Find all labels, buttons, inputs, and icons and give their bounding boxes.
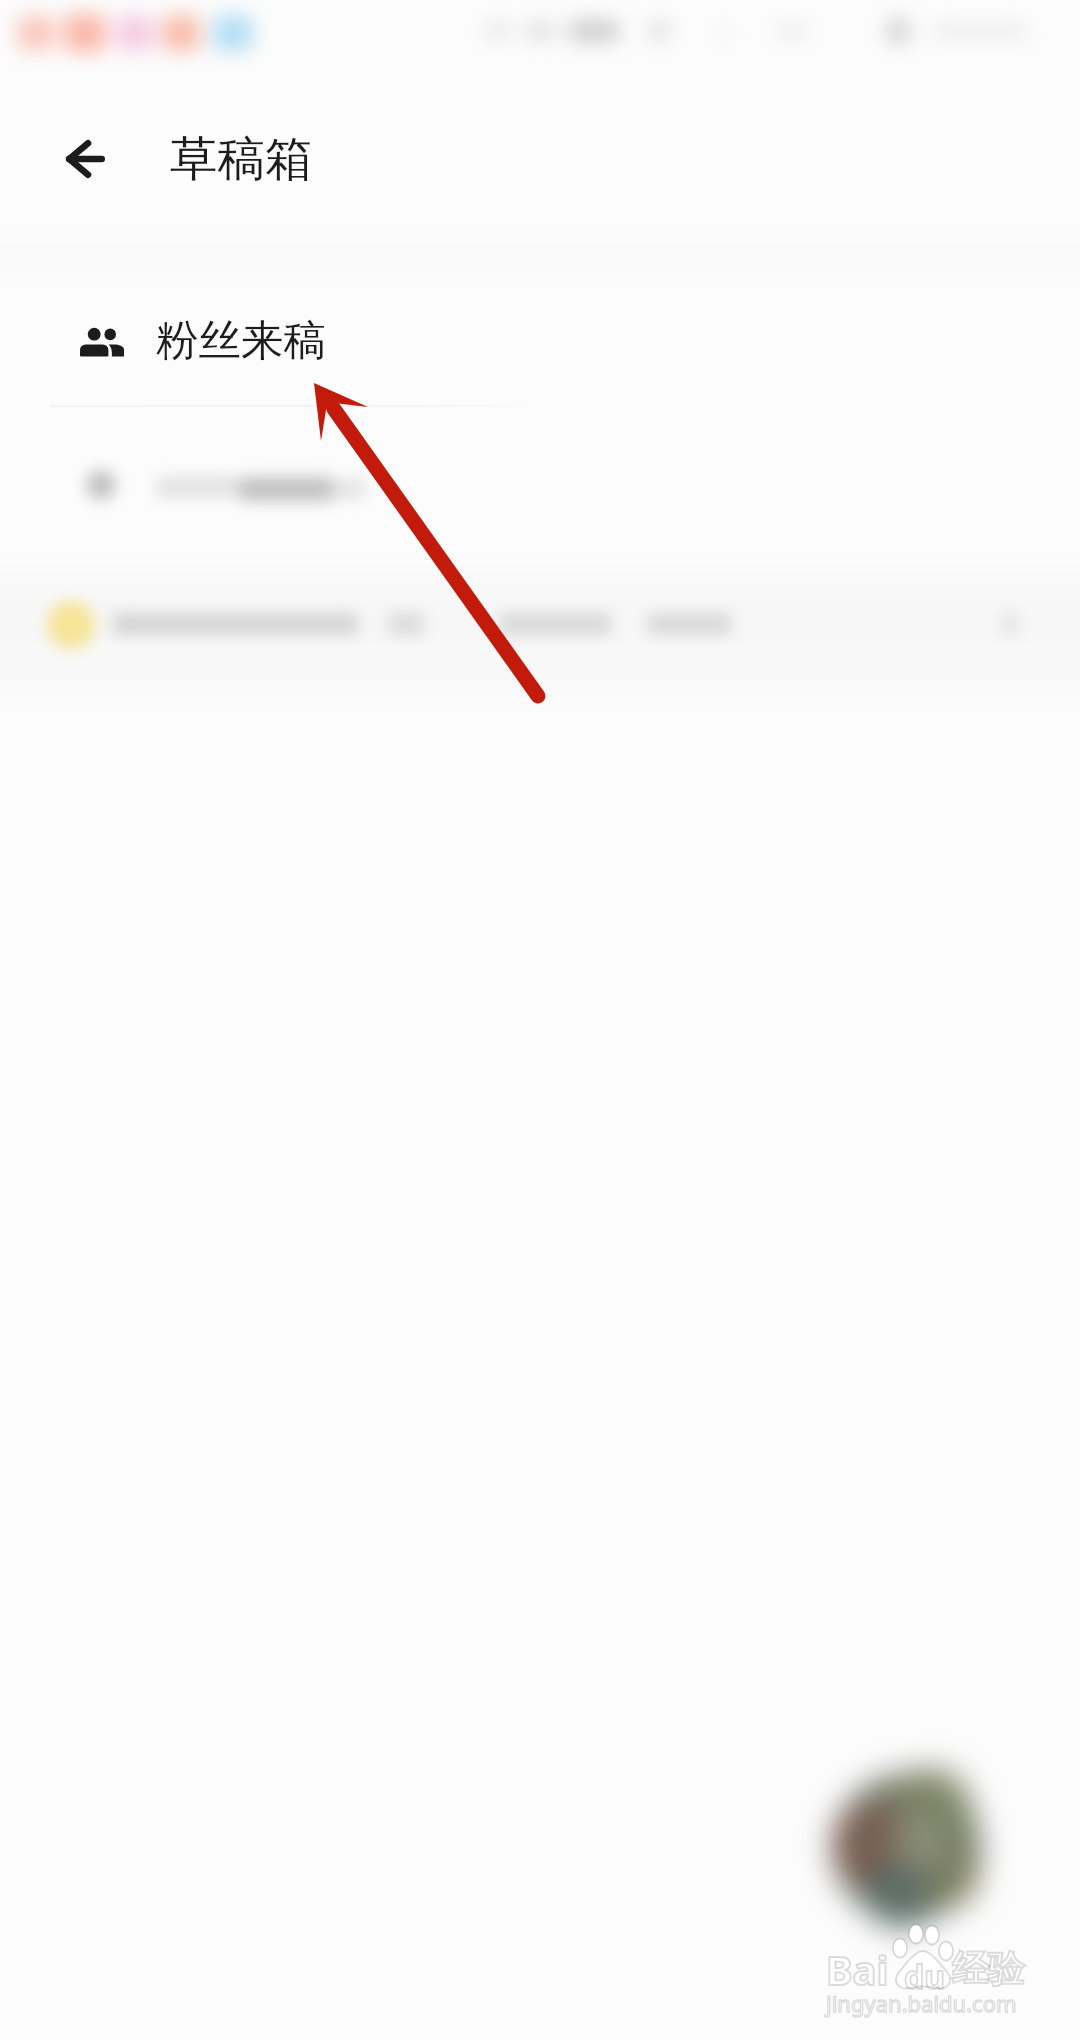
- staticText: Bai: [826, 1942, 889, 1996]
- staticText: 经验: [952, 1946, 1024, 1991]
- staticText: jingyan.baidu.com: [826, 1988, 1017, 2018]
- staticText: jingyan.baidu.com: [826, 1988, 1017, 2018]
- button[interactable]: Draft item: [0, 556, 1080, 692]
- staticText: 粉丝来稿: [156, 314, 326, 368]
- staticText: 草稿箱: [170, 129, 313, 189]
- staticText: 经验: [952, 1946, 1024, 1991]
- button[interactable]: 粉丝来稿: [0, 283, 1080, 399]
- button[interactable]: Draft item: [0, 420, 1080, 548]
- staticText: du: [904, 1955, 946, 1999]
- button[interactable]: Back: [45, 119, 125, 199]
- staticText: Bai: [826, 1942, 889, 1996]
